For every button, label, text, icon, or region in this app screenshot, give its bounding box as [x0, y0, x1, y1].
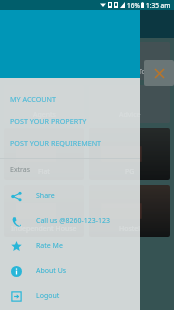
- button[interactable]: Flat: [4, 128, 84, 180]
- button[interactable]: POST YOUR PROPERTY: [0, 110, 140, 132]
- button[interactable]: Independent House: [4, 185, 84, 237]
- staticText: Advice: [119, 110, 141, 120]
- staticText: Share: [36, 191, 55, 201]
- button[interactable]: Search To: [89, 42, 170, 80]
- button[interactable]: Advice: [89, 85, 170, 123]
- staticText: Search To: [114, 67, 146, 77]
- staticText: POST YOUR PROPERTY: [10, 116, 87, 126]
- button[interactable]: Share: [0, 183, 140, 208]
- staticText: PG: [125, 167, 135, 177]
- button[interactable]: MY ACCOUNT: [0, 88, 140, 110]
- staticText: 16%: [127, 1, 140, 10]
- button[interactable]: Agents: [4, 85, 84, 123]
- staticText: Call us @8260-123-123: [36, 216, 111, 226]
- button[interactable]: Logout: [0, 283, 140, 308]
- staticText: Independent House: [11, 224, 77, 234]
- button[interactable]: Search Property: [4, 42, 84, 80]
- staticText: 1:35 am: [146, 1, 171, 10]
- staticText: Extras: [10, 165, 31, 175]
- button[interactable]: Close: [144, 60, 174, 86]
- button[interactable]: Rate Me: [0, 233, 140, 258]
- staticText: Flat: [38, 167, 50, 177]
- button[interactable]: Call us @8260-123-123: [0, 208, 140, 233]
- staticText: About Us: [36, 266, 67, 276]
- button[interactable]: About Us: [0, 258, 140, 283]
- button[interactable]: PG: [89, 128, 170, 180]
- button[interactable]: Hostel: [89, 185, 170, 237]
- button[interactable]: POST YOUR REQUIREMENT: [0, 132, 140, 154]
- staticText: Hostel: [119, 224, 141, 234]
- staticText: Agents: [33, 110, 56, 120]
- staticText: POST YOUR REQUIREMENT: [10, 138, 102, 148]
- staticText: MY ACCOUNT: [10, 94, 57, 104]
- staticText: Logout: [36, 291, 60, 301]
- staticText: Rate Me: [36, 241, 63, 251]
